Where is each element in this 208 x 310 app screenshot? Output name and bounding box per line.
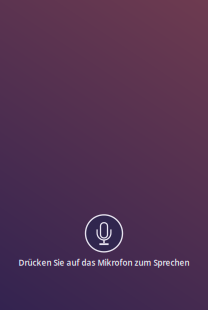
button[interactable]: Mikrofon – Aufnahme starten: [85, 214, 123, 252]
staticText: Drücken Sie auf das Mikrofon zum Spreche…: [18, 257, 189, 268]
